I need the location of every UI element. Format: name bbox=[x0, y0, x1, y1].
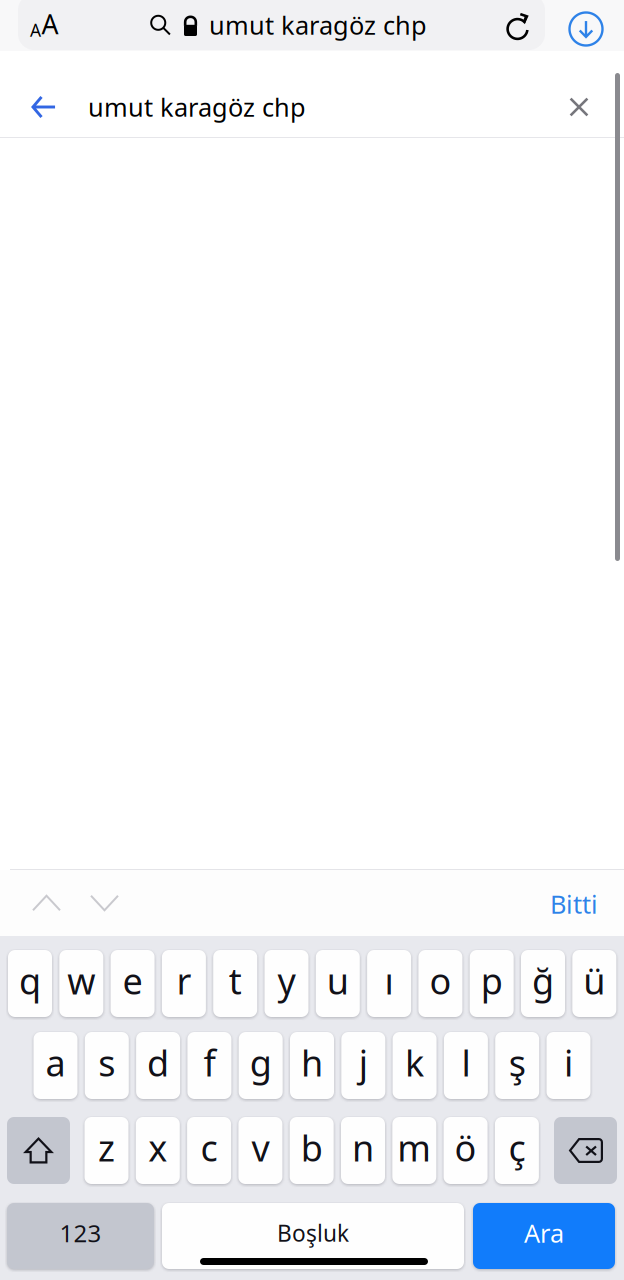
staticText: w bbox=[67, 957, 95, 1004]
button[interactable]: Shift bbox=[7, 1117, 70, 1184]
staticText: ü bbox=[583, 957, 605, 1004]
button[interactable]: ç bbox=[495, 1117, 539, 1184]
button[interactable]: i bbox=[546, 1032, 590, 1099]
button[interactable]: n bbox=[341, 1117, 385, 1184]
button[interactable]: c bbox=[187, 1117, 231, 1184]
button[interactable]: o bbox=[418, 950, 462, 1017]
button[interactable]: ş bbox=[495, 1032, 539, 1099]
staticText: d bbox=[147, 1039, 169, 1086]
button[interactable]: s bbox=[85, 1032, 129, 1099]
button[interactable]: 123 bbox=[7, 1203, 154, 1269]
staticText: k bbox=[405, 1039, 424, 1086]
button[interactable]: Back bbox=[20, 83, 68, 131]
button[interactable]: Next result bbox=[82, 886, 127, 920]
button[interactable]: ü bbox=[572, 950, 616, 1017]
button[interactable]: Close find bbox=[555, 83, 603, 131]
button[interactable]: z bbox=[84, 1117, 128, 1184]
button[interactable]: ğ bbox=[521, 950, 565, 1017]
button[interactable]: ı bbox=[367, 950, 411, 1017]
staticText: x bbox=[148, 1124, 167, 1171]
staticText: l bbox=[461, 1039, 470, 1086]
button[interactable]: Bitti bbox=[534, 884, 614, 924]
staticText: t bbox=[229, 957, 242, 1004]
button[interactable]: b bbox=[290, 1117, 334, 1184]
staticText: r bbox=[176, 957, 191, 1004]
staticText: u bbox=[327, 957, 349, 1004]
staticText: o bbox=[429, 957, 451, 1004]
staticText: p bbox=[481, 957, 503, 1004]
button[interactable]: Ara bbox=[473, 1203, 615, 1269]
button[interactable]: l bbox=[444, 1032, 488, 1099]
button[interactable]: r bbox=[162, 950, 206, 1017]
staticText: q bbox=[19, 957, 41, 1004]
staticText: ö bbox=[455, 1124, 477, 1171]
staticText: c bbox=[201, 1124, 218, 1171]
staticText: n bbox=[352, 1124, 374, 1171]
button[interactable]: m bbox=[392, 1117, 436, 1184]
button[interactable]: p bbox=[470, 950, 514, 1017]
staticText: m bbox=[397, 1124, 431, 1171]
staticText: ı bbox=[385, 957, 394, 1004]
button[interactable]: Delete bbox=[554, 1117, 617, 1184]
staticText: h bbox=[301, 1039, 323, 1086]
staticText: b bbox=[301, 1124, 323, 1171]
staticText: Boşluk bbox=[277, 1218, 349, 1248]
button[interactable]: ö bbox=[444, 1117, 488, 1184]
button[interactable]: f bbox=[187, 1032, 231, 1099]
button[interactable]: q bbox=[8, 950, 52, 1017]
button[interactable]: Reload bbox=[499, 8, 539, 44]
staticText: Bitti bbox=[550, 887, 598, 921]
button[interactable]: x bbox=[136, 1117, 180, 1184]
staticText: Ara bbox=[524, 1216, 564, 1250]
button[interactable]: a bbox=[33, 1032, 77, 1099]
button[interactable]: Page settings bbox=[18, 0, 72, 50]
button[interactable]: h bbox=[290, 1032, 334, 1099]
button[interactable]: j bbox=[341, 1032, 385, 1099]
button[interactable]: Previous result bbox=[24, 886, 69, 920]
staticText: ğ bbox=[532, 957, 554, 1004]
button[interactable]: e bbox=[111, 950, 155, 1017]
button[interactable]: w bbox=[59, 950, 103, 1017]
staticText: j bbox=[359, 1039, 368, 1086]
staticText: 123 bbox=[59, 1217, 101, 1249]
button[interactable]: y bbox=[264, 950, 308, 1017]
staticText: A bbox=[30, 18, 41, 41]
staticText: s bbox=[98, 1039, 115, 1086]
staticText: ş bbox=[509, 1039, 526, 1086]
button[interactable]: Boşluk bbox=[162, 1203, 464, 1269]
staticText: A bbox=[41, 6, 58, 42]
staticText: umut karagöz chp bbox=[88, 90, 306, 124]
staticText: umut karagöz chp bbox=[209, 8, 427, 42]
button[interactable]: v bbox=[238, 1117, 282, 1184]
staticText: e bbox=[123, 957, 143, 1004]
staticText: a bbox=[45, 1039, 65, 1086]
button[interactable]: t bbox=[213, 950, 257, 1017]
button[interactable]: g bbox=[239, 1032, 283, 1099]
staticText: f bbox=[203, 1039, 215, 1086]
staticText: ç bbox=[508, 1124, 525, 1171]
staticText: g bbox=[250, 1039, 272, 1086]
staticText: z bbox=[98, 1124, 115, 1171]
button[interactable]: d bbox=[136, 1032, 180, 1099]
staticText: v bbox=[251, 1124, 269, 1171]
button[interactable]: Downloads bbox=[566, 9, 606, 49]
staticText: y bbox=[277, 957, 295, 1004]
staticText: i bbox=[564, 1039, 573, 1086]
button[interactable]: u bbox=[316, 950, 360, 1017]
button[interactable]: k bbox=[393, 1032, 437, 1099]
